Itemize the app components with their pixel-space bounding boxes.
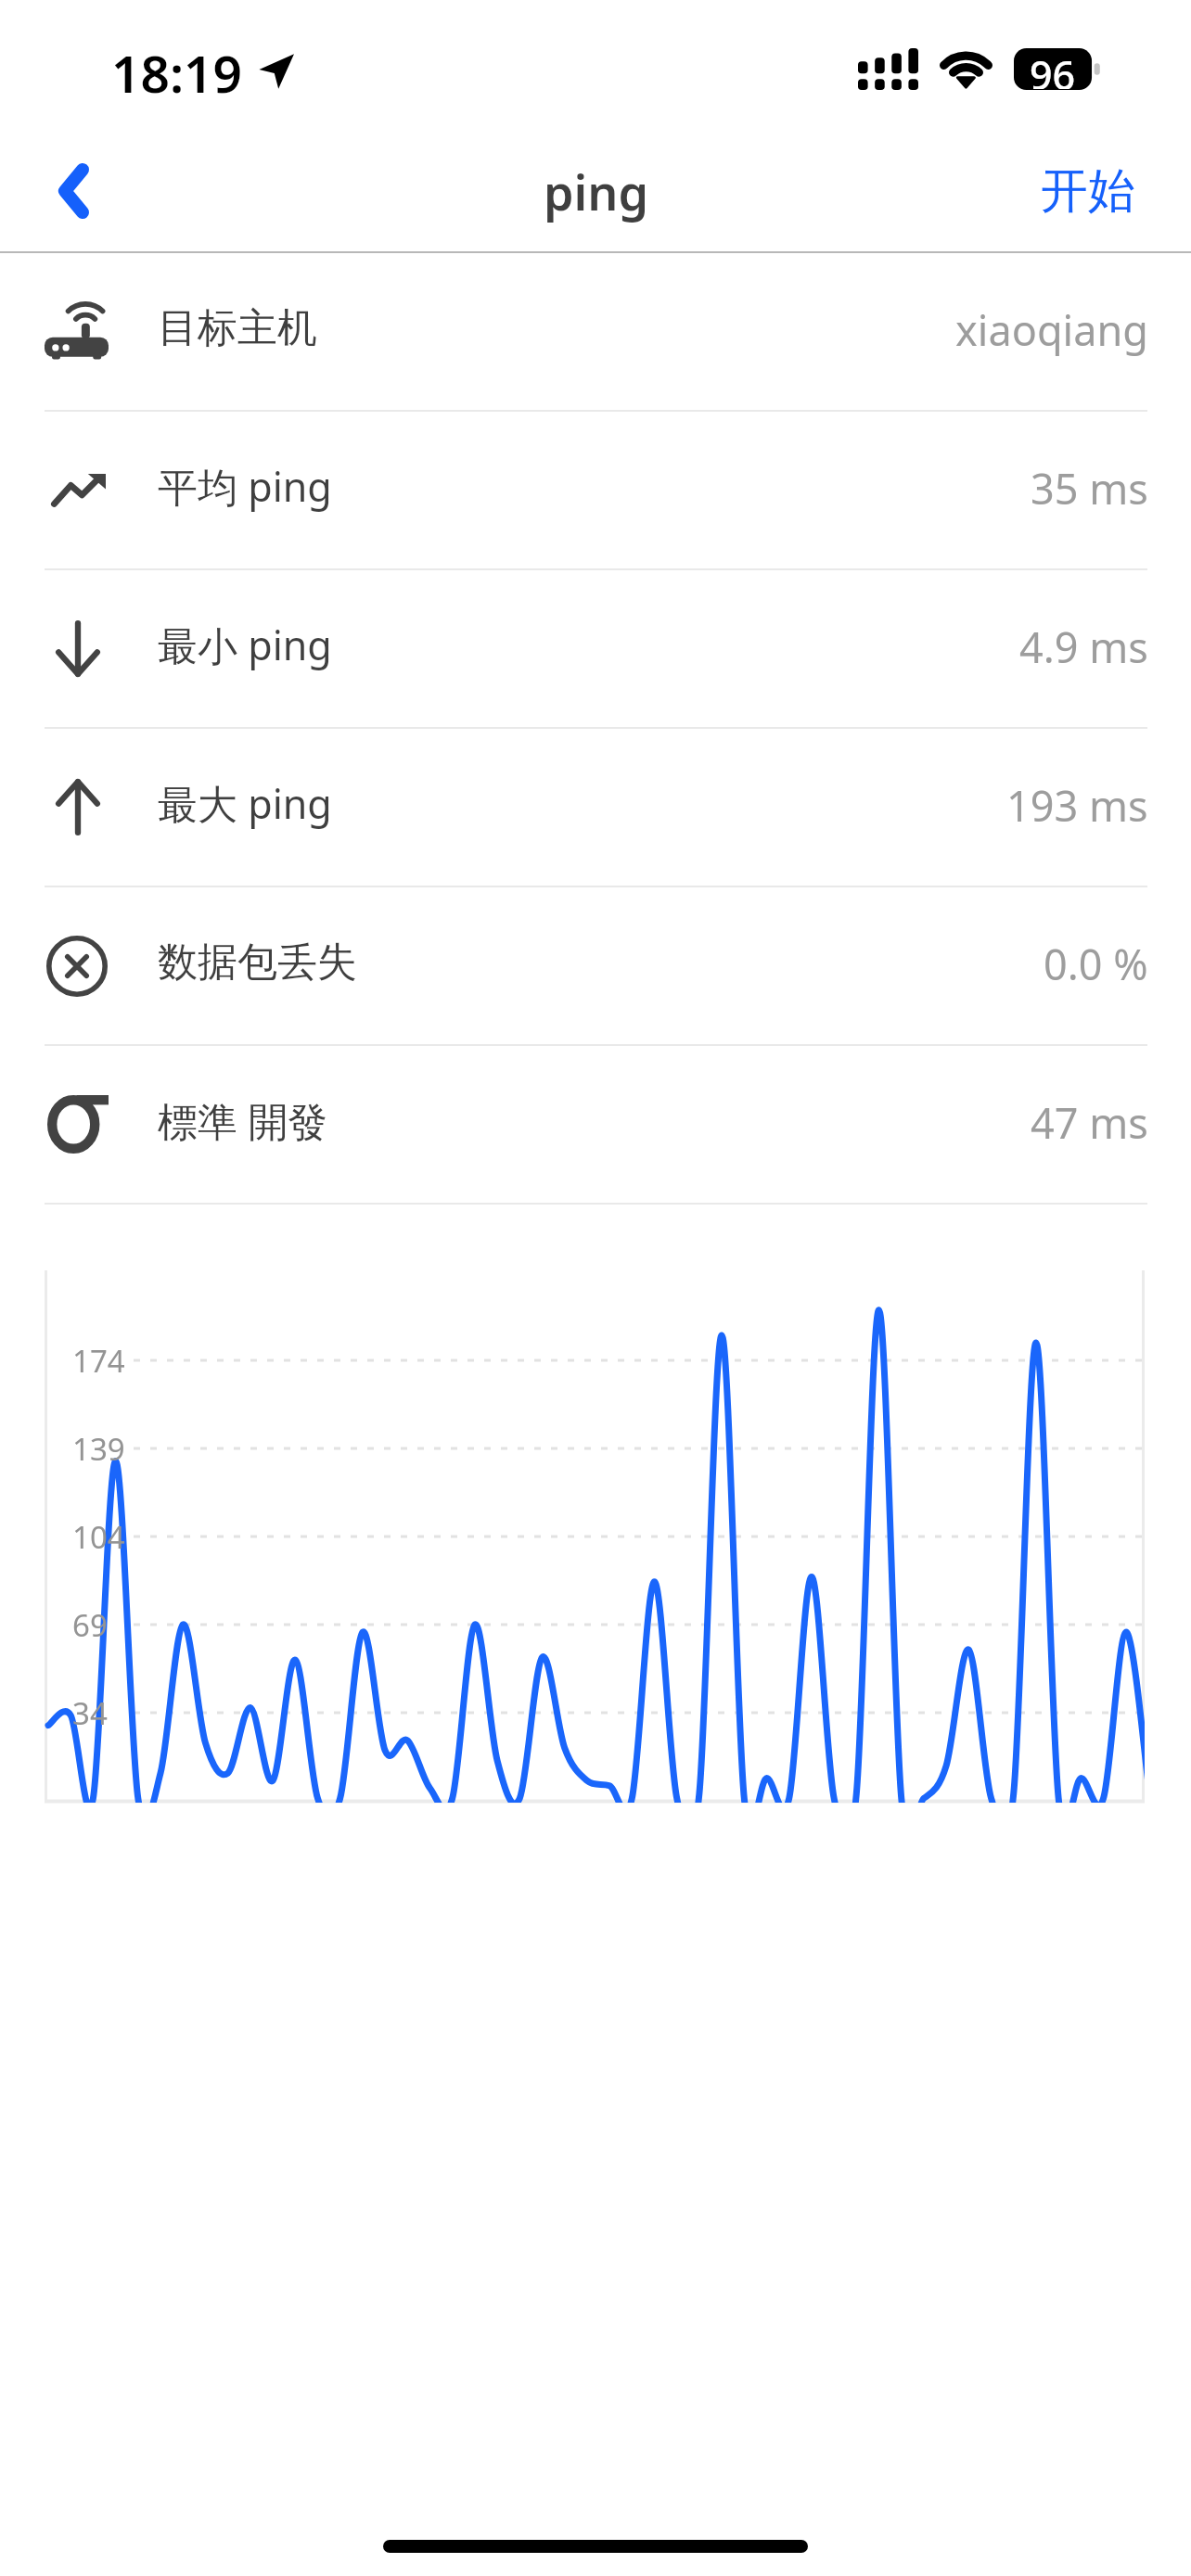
staticText: 174 bbox=[72, 1340, 125, 1382]
staticText: 標準 開發 bbox=[158, 1093, 328, 1148]
staticText: 193 ms bbox=[1006, 777, 1148, 834]
staticText: 开始 bbox=[1041, 161, 1135, 221]
button[interactable]: 目标主机 bbox=[0, 253, 1191, 412]
button[interactable]: 最小 ping bbox=[0, 570, 1191, 729]
staticText: 数据包丢失 bbox=[158, 937, 357, 988]
button[interactable]: 开始 bbox=[1000, 134, 1191, 249]
staticText: 96 bbox=[1030, 47, 1076, 89]
staticText: xiaoqiang bbox=[955, 301, 1148, 358]
staticText: 104 bbox=[72, 1516, 125, 1558]
staticText: 139 bbox=[72, 1428, 125, 1470]
staticText: 平均 ping bbox=[158, 459, 332, 514]
staticText: 0.0 % bbox=[1044, 936, 1148, 992]
staticText: 35 ms bbox=[1031, 460, 1148, 516]
button[interactable]: 平均 ping bbox=[0, 412, 1191, 570]
staticText: 69 bbox=[72, 1604, 108, 1646]
staticText: 最小 ping bbox=[158, 618, 332, 672]
button[interactable]: 数据包丢失 bbox=[0, 887, 1191, 1046]
staticText: 最大 ping bbox=[158, 776, 332, 831]
button[interactable]: Back bbox=[17, 136, 130, 246]
staticText: ping bbox=[544, 159, 648, 224]
staticText: 18:19 bbox=[111, 38, 243, 108]
staticText: 34 bbox=[72, 1692, 108, 1734]
staticText: 4.9 ms bbox=[1019, 618, 1148, 675]
staticText: 47 ms bbox=[1031, 1094, 1148, 1151]
button[interactable]: 最大 ping bbox=[0, 729, 1191, 887]
button[interactable]: 標準 開發 bbox=[0, 1046, 1191, 1205]
staticText: 目标主机 bbox=[158, 303, 317, 353]
